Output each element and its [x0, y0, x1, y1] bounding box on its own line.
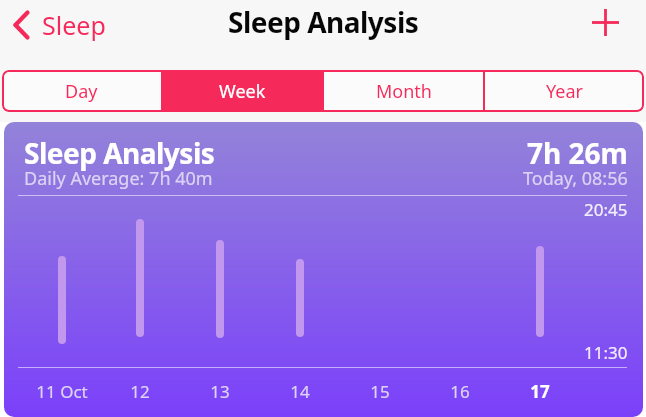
staticText: 20:45 [584, 198, 628, 221]
staticText: 16 [450, 380, 470, 403]
staticText: 14 [290, 380, 310, 403]
staticText: Month [376, 79, 432, 104]
staticText: Sleep Analysis [24, 134, 215, 172]
staticText: Sleep Analysis [228, 3, 419, 41]
staticText: 13 [210, 380, 230, 403]
staticText: 11 Oct [36, 380, 88, 403]
staticText: Sleep [42, 8, 106, 42]
staticText: 12 [130, 380, 150, 403]
staticText: Today, 08:56 [523, 166, 628, 191]
button[interactable]: Month [324, 70, 483, 112]
button[interactable]: Day [2, 70, 161, 112]
button[interactable]: Week [163, 70, 322, 112]
staticText: Year [546, 79, 583, 104]
button[interactable]: Sleep [13, 4, 106, 46]
button[interactable]: Sleep Analysis [4, 122, 643, 417]
staticText: Day [65, 79, 98, 104]
staticText: 17 [530, 380, 550, 403]
staticText: 7h 26m [527, 134, 628, 172]
staticText: Daily Average: 7h 40m [24, 166, 213, 191]
button[interactable]: Year [485, 70, 644, 112]
button[interactable] [585, 2, 625, 42]
staticText: 11:30 [584, 341, 628, 364]
staticText: Week [219, 79, 266, 104]
staticText: 15 [370, 380, 390, 403]
